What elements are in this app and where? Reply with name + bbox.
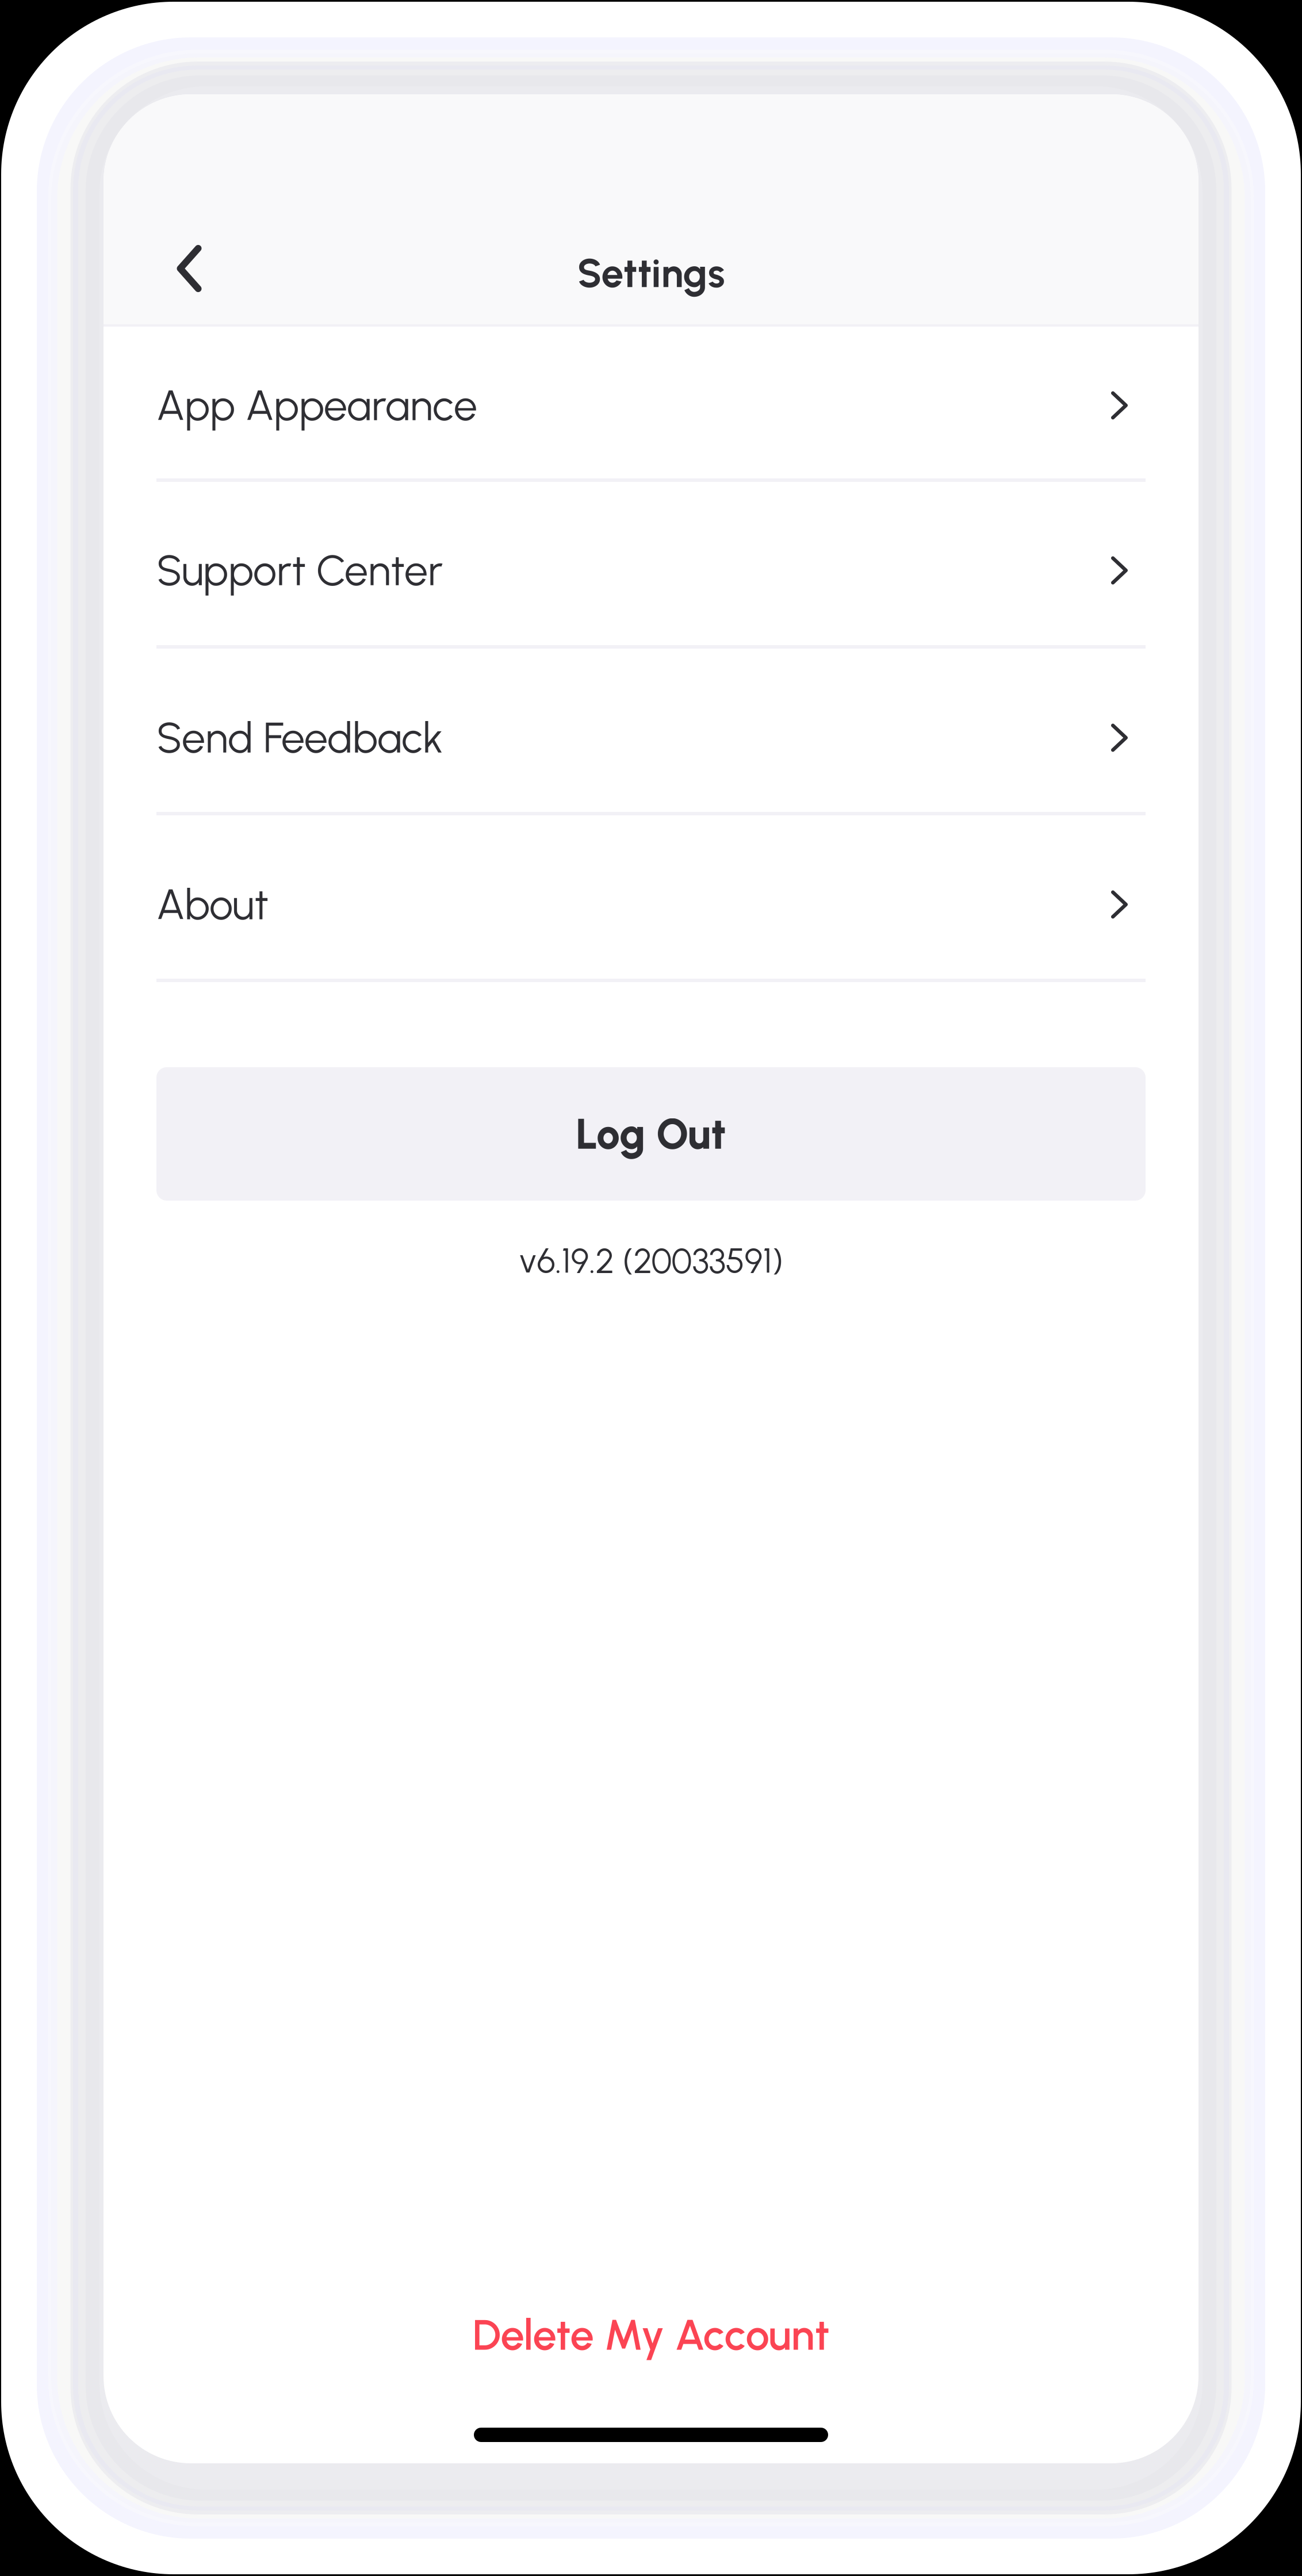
button[interactable]: Send Feedback (104, 649, 1198, 815)
staticText: Delete My Account (472, 2309, 830, 2360)
button[interactable]: Support Center (104, 482, 1198, 649)
staticText: Send Feedback (156, 712, 443, 763)
button[interactable]: Log Out (156, 1067, 1146, 1201)
staticText: v6.19.2 (20033591) (519, 1240, 783, 1281)
staticText: Support Center (156, 545, 443, 596)
staticText: App Appearance (156, 380, 477, 431)
button[interactable]: Back (150, 223, 228, 315)
staticText: Log Out (576, 1109, 726, 1159)
staticText: About (156, 879, 269, 930)
button[interactable]: App Appearance (104, 327, 1198, 482)
staticText: Settings (577, 249, 725, 297)
button[interactable]: Delete My Account (438, 2283, 864, 2375)
button[interactable]: About (104, 815, 1198, 982)
